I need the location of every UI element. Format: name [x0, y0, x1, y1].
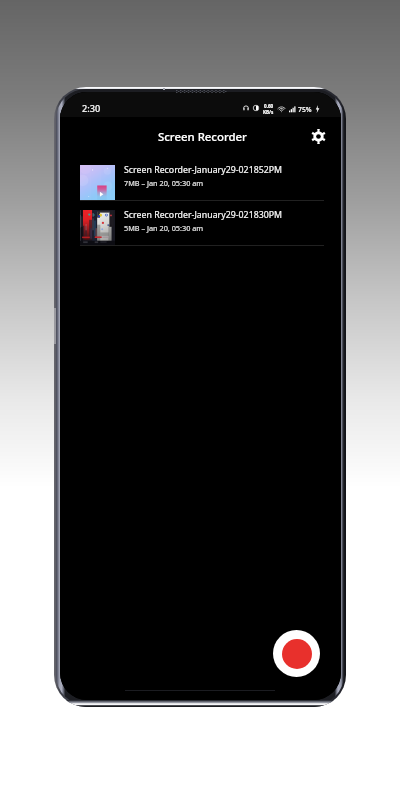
staticText: Screen Recorder-January29-021852PM: [124, 164, 283, 176]
staticText: 0.60: [264, 103, 274, 109]
button[interactable]: Screen Recorder-January29-021852PM: [60, 156, 341, 201]
staticText: KB/s: [263, 109, 274, 115]
staticText: 7MB – Jan 20, 05:30 am: [124, 178, 204, 188]
button[interactable]: Screen Recorder-January29-021830PM: [60, 201, 341, 246]
staticText: 75%: [298, 105, 312, 114]
staticText: 5MB – Jan 20, 05:30 am: [124, 223, 204, 233]
staticText: Screen Recorder: [158, 129, 247, 145]
button[interactable]: Start recording: [273, 630, 320, 677]
button[interactable]: Settings: [305, 123, 331, 149]
staticText: 2:30: [82, 102, 101, 115]
staticText: Screen Recorder-January29-021830PM: [124, 209, 283, 221]
